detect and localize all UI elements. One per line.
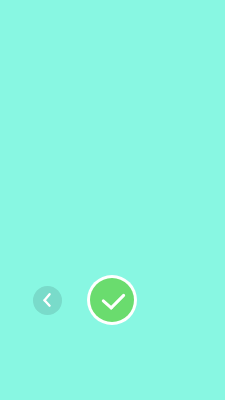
button[interactable]: Back: [33, 286, 62, 315]
button[interactable]: Confirm: [87, 275, 137, 325]
